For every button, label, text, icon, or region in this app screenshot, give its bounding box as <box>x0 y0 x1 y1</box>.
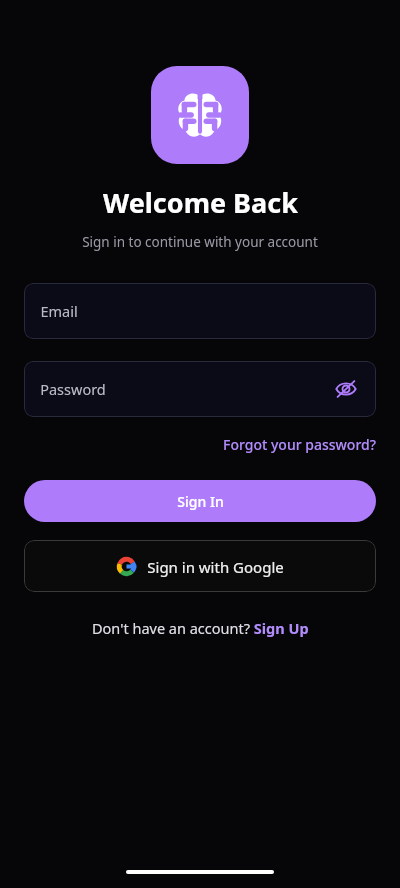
staticText: Password <box>40 379 106 399</box>
staticText: Welcome Back <box>103 184 298 221</box>
staticText: Sign in to continue with your account <box>82 233 318 251</box>
button[interactable]: Forgot your password? <box>223 431 376 458</box>
button[interactable]: Sign in with Google <box>24 540 376 592</box>
button[interactable]: Password <box>24 361 376 417</box>
button[interactable]: Show password <box>332 375 360 403</box>
button[interactable]: Don't have an account? Sign Up <box>84 614 317 642</box>
button[interactable]: Sign In <box>24 480 376 522</box>
staticText: Email <box>40 301 78 321</box>
staticText: Sign in with Google <box>147 557 284 577</box>
button[interactable]: App logo <box>151 66 249 164</box>
staticText: Sign In <box>177 492 224 511</box>
staticText: Forgot your password? <box>223 435 376 454</box>
staticText: Don't have an account? Sign Up <box>92 618 309 638</box>
button[interactable]: Email <box>24 283 376 339</box>
